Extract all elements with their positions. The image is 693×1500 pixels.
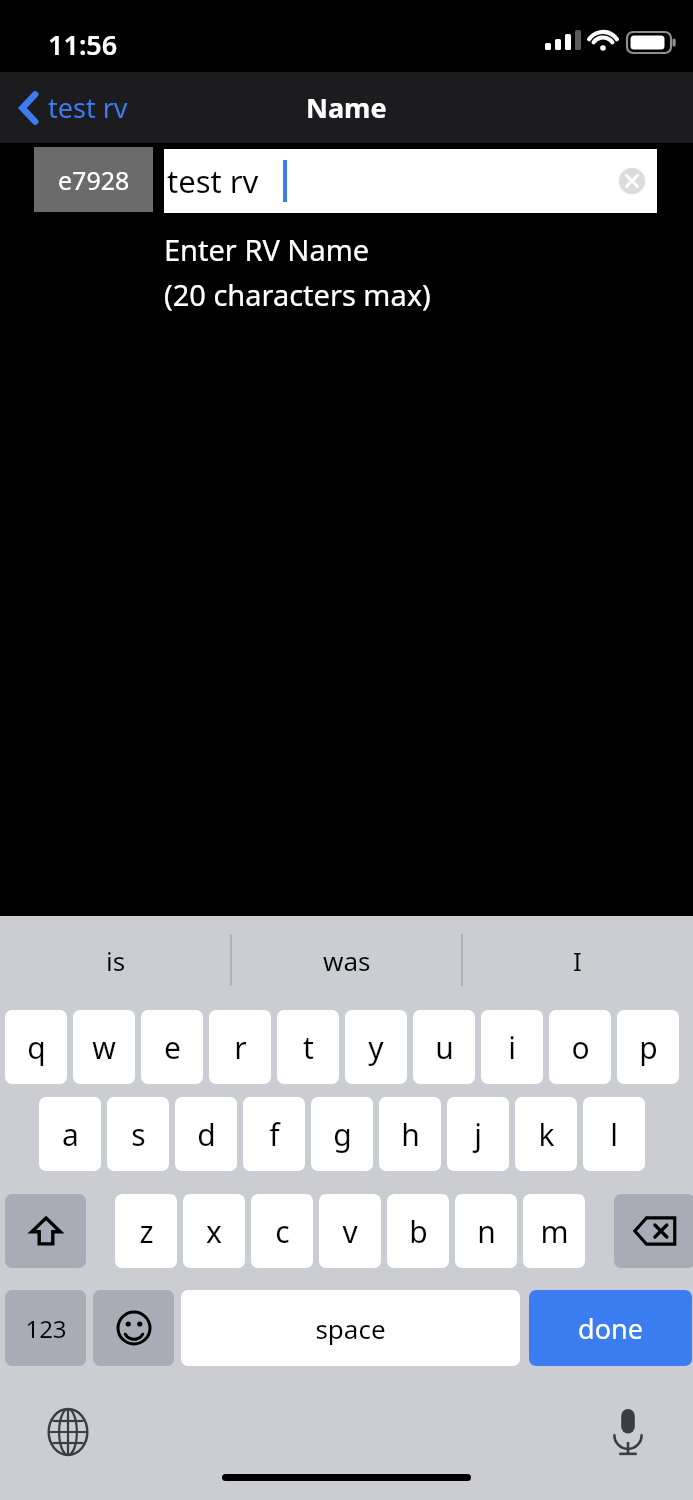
button[interactable]: v: [319, 1194, 381, 1268]
staticText: m: [540, 1211, 569, 1252]
staticText: p: [639, 1027, 658, 1068]
staticText: t: [303, 1027, 314, 1068]
button[interactable]: I: [462, 916, 693, 1004]
button[interactable]: Change keyboard: [40, 1404, 96, 1460]
staticText: z: [139, 1211, 154, 1252]
button[interactable]: is: [0, 916, 231, 1004]
staticText: was: [323, 943, 371, 978]
staticText: s: [131, 1114, 146, 1155]
staticText: a: [62, 1114, 79, 1155]
button[interactable]: Shift: [5, 1194, 86, 1268]
staticText: f: [269, 1114, 280, 1155]
button[interactable]: p: [617, 1010, 679, 1084]
staticText: test rv: [48, 89, 128, 126]
button[interactable]: d: [175, 1097, 237, 1171]
staticText: u: [435, 1027, 454, 1068]
button[interactable]: n: [455, 1194, 517, 1268]
staticText: q: [27, 1027, 46, 1068]
button[interactable]: was: [231, 916, 462, 1004]
staticText: space: [315, 1311, 386, 1346]
staticText: r: [234, 1027, 247, 1068]
staticText: 11:56: [48, 26, 118, 63]
button[interactable]: Clear text: [617, 166, 647, 196]
staticText: v: [342, 1211, 358, 1252]
staticText: e: [164, 1027, 181, 1068]
staticText: is: [106, 943, 126, 978]
button[interactable]: g: [311, 1097, 373, 1171]
button[interactable]: Emoji: [93, 1290, 174, 1366]
button[interactable]: r: [209, 1010, 271, 1084]
button[interactable]: u: [413, 1010, 475, 1084]
button[interactable]: s: [107, 1097, 169, 1171]
staticText: i: [508, 1027, 516, 1068]
button[interactable]: f: [243, 1097, 305, 1171]
button[interactable]: h: [379, 1097, 441, 1171]
staticText: k: [538, 1114, 555, 1155]
button[interactable]: 123: [5, 1290, 86, 1366]
staticText: done: [578, 1310, 643, 1347]
button[interactable]: m: [523, 1194, 585, 1268]
button[interactable]: z: [115, 1194, 177, 1268]
staticText: b: [409, 1211, 428, 1252]
staticText: h: [401, 1114, 420, 1155]
staticText: 123: [25, 1312, 67, 1345]
button[interactable]: l: [583, 1097, 645, 1171]
staticText: y: [368, 1027, 384, 1068]
staticText: I: [573, 943, 582, 978]
button[interactable]: Dictation: [600, 1404, 656, 1460]
button[interactable]: Backspace: [614, 1194, 693, 1268]
button[interactable]: test rv: [18, 89, 128, 126]
button[interactable]: y: [345, 1010, 407, 1084]
button[interactable]: a: [39, 1097, 101, 1171]
button[interactable]: c: [251, 1194, 313, 1268]
staticText: c: [275, 1211, 290, 1252]
staticText: d: [197, 1114, 216, 1155]
staticText: Enter RV Name: [164, 230, 370, 269]
staticText: e7928: [58, 163, 130, 197]
button[interactable]: w: [73, 1010, 135, 1084]
staticText: l: [610, 1114, 618, 1155]
staticText: x: [206, 1211, 222, 1252]
button[interactable]: o: [549, 1010, 611, 1084]
button[interactable]: done: [529, 1290, 692, 1366]
button[interactable]: test rv: [164, 149, 657, 213]
button[interactable]: q: [5, 1010, 67, 1084]
button[interactable]: e7928: [34, 147, 153, 212]
staticText: test rv: [167, 160, 259, 202]
button[interactable]: e: [141, 1010, 203, 1084]
staticText: w: [92, 1027, 116, 1068]
staticText: g: [333, 1114, 352, 1155]
button[interactable]: i: [481, 1010, 543, 1084]
staticText: j: [474, 1114, 482, 1155]
button[interactable]: x: [183, 1194, 245, 1268]
staticText: o: [571, 1027, 590, 1068]
button[interactable]: b: [387, 1194, 449, 1268]
button[interactable]: t: [277, 1010, 339, 1084]
button[interactable]: k: [515, 1097, 577, 1171]
staticText: Name: [306, 89, 387, 126]
button[interactable]: space: [181, 1290, 520, 1366]
button[interactable]: j: [447, 1097, 509, 1171]
staticText: n: [477, 1211, 496, 1252]
staticText: (20 characters max): [164, 275, 431, 314]
